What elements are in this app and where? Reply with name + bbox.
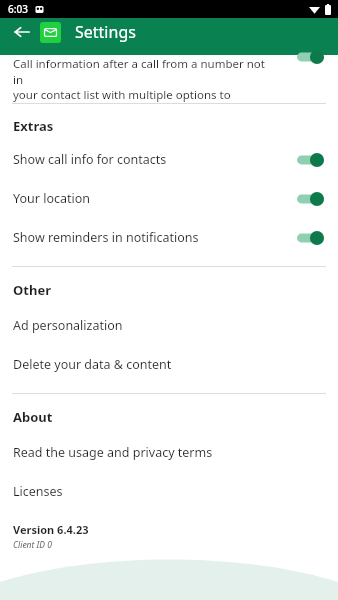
button[interactable]: Toggle xyxy=(297,49,324,65)
staticText: Settings xyxy=(75,21,136,43)
button[interactable]: Ad personalization xyxy=(0,313,338,338)
button[interactable]: Show reminders in notifications xyxy=(0,225,338,250)
button[interactable]: Your location xyxy=(0,186,338,211)
staticText: Client ID 0 xyxy=(13,539,52,551)
button[interactable]: Back xyxy=(8,18,36,46)
staticText: your contact list with multiple options … xyxy=(13,87,268,103)
staticText: Version 6.4.23 xyxy=(13,522,89,537)
button[interactable]: Toggle xyxy=(297,191,324,207)
staticText: 6:03 xyxy=(8,2,28,16)
button[interactable]: Licenses xyxy=(0,479,338,504)
staticText: Other xyxy=(13,281,51,299)
staticText: Extras xyxy=(13,117,54,135)
staticText: Call information after a call from a num… xyxy=(13,56,268,87)
button[interactable]: Toggle xyxy=(297,230,324,246)
staticText: About xyxy=(13,408,53,426)
staticText: Show reminders in notifications xyxy=(13,229,297,246)
staticText: Your location xyxy=(13,190,297,207)
button[interactable]: Show call info for contacts xyxy=(0,147,338,172)
staticText: Show call info for contacts xyxy=(13,151,297,168)
staticText: Read the usage and privacy terms xyxy=(13,444,213,461)
staticText: Licenses xyxy=(13,483,63,500)
button[interactable]: Delete your data & content xyxy=(0,352,338,377)
button[interactable]: Read the usage and privacy terms xyxy=(0,440,338,465)
staticText: Delete your data & content xyxy=(13,356,172,373)
button[interactable]: Toggle xyxy=(297,152,324,168)
staticText: Ad personalization xyxy=(13,317,123,334)
